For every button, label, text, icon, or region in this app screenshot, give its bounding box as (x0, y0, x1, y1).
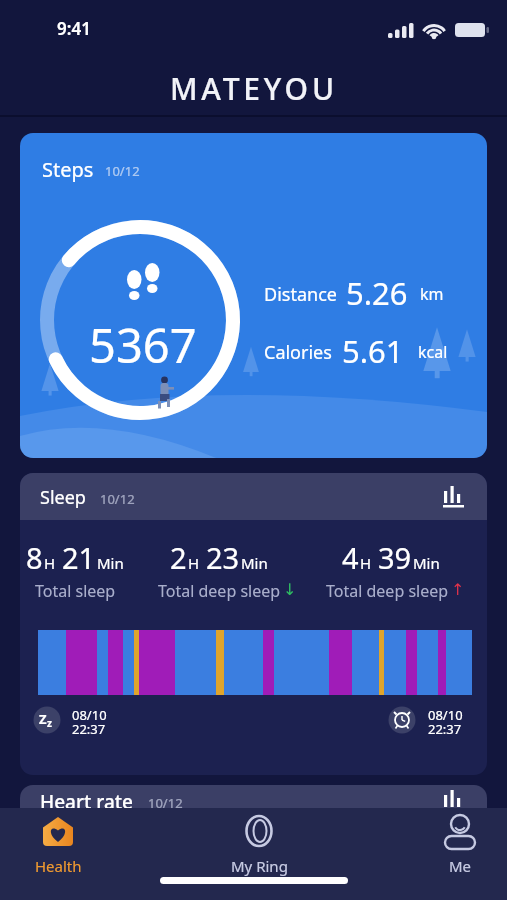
staticText: 9:41 (57, 17, 91, 40)
staticText: 22:37 (428, 720, 462, 738)
staticText: My Ring (231, 856, 288, 876)
staticText: ↑ (451, 580, 465, 599)
staticText: 39 (378, 538, 412, 577)
staticText: Min (413, 553, 440, 573)
button[interactable]: Me (420, 812, 500, 882)
staticText: Health (35, 856, 82, 876)
button[interactable]: My Ring (214, 812, 304, 882)
button[interactable]: Sleep (20, 473, 487, 775)
staticText: Sleep (40, 485, 86, 510)
button[interactable]: Steps (20, 133, 487, 458)
staticText: 21 (62, 538, 96, 577)
staticText: Steps (42, 156, 94, 183)
staticText: Total sleep (35, 580, 116, 602)
staticText: 23 (206, 538, 240, 577)
staticText: H (360, 553, 372, 573)
staticText: H (188, 553, 200, 573)
staticText: 10/12 (100, 490, 135, 508)
staticText: 4 (342, 538, 359, 577)
staticText: 10/12 (148, 794, 183, 812)
staticText: Me (449, 856, 472, 876)
staticText: 08/10 (72, 706, 107, 724)
staticText: H (44, 553, 56, 573)
staticText: Total deep sleep (158, 580, 281, 602)
staticText: 8 (26, 538, 43, 577)
staticText: Calories (264, 340, 332, 365)
staticText: 5.26 (346, 272, 408, 314)
staticText: Min (241, 553, 268, 573)
staticText: Heart rate (40, 789, 133, 815)
staticText: z (47, 716, 52, 730)
staticText: kcal (418, 341, 448, 363)
button[interactable]: Health (18, 812, 98, 882)
staticText: Total deep sleep (326, 580, 449, 602)
staticText: Distance (264, 282, 337, 307)
staticText: 5367 (89, 313, 197, 377)
staticText: ↓ (283, 580, 297, 599)
staticText: Z (39, 710, 47, 728)
staticText: MATEYOU (170, 68, 338, 109)
staticText: km (420, 283, 444, 305)
staticText: 08/10 (428, 706, 463, 724)
staticText: 10/12 (105, 162, 140, 180)
staticText: 2 (170, 538, 187, 577)
staticText: 22:37 (72, 720, 106, 738)
staticText: 5.61 (342, 330, 404, 372)
staticText: Min (97, 553, 124, 573)
